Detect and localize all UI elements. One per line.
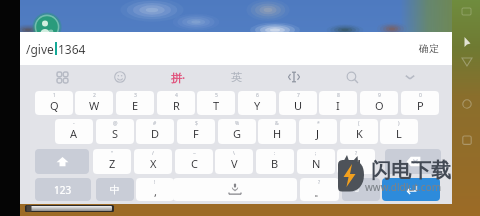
button[interactable]: $: [177, 119, 215, 144]
staticText: W: [89, 98, 100, 113]
staticText: *: [317, 120, 320, 127]
staticText: #: [153, 120, 157, 127]
staticText: A: [70, 126, 78, 141]
staticText: 123: [54, 183, 72, 197]
staticText: R: [173, 98, 180, 113]
staticText: ): [398, 120, 400, 127]
button[interactable]: Shift: [35, 149, 89, 174]
staticText: E: [132, 98, 139, 113]
staticText: -: [73, 120, 75, 127]
staticText: U: [294, 98, 303, 113]
button[interactable]: 英: [207, 65, 265, 89]
staticText: T: [213, 98, 220, 113]
staticText: 拼·: [171, 70, 186, 85]
staticText: &: [275, 120, 279, 127]
staticText: M: [351, 156, 361, 171]
staticText: ;: [315, 150, 317, 157]
staticText: 确定: [419, 42, 439, 55]
staticText: Z: [109, 156, 116, 171]
staticText: V: [231, 156, 238, 171]
staticText: K: [356, 126, 363, 141]
staticText: 3: [134, 92, 137, 99]
button[interactable]: Hide keyboard: [381, 65, 439, 89]
button[interactable]: Enter: [382, 178, 440, 201]
button[interactable]: 7: [279, 91, 317, 115]
staticText: S: [112, 126, 119, 141]
button[interactable]: 4: [157, 91, 195, 115]
staticText: 1364: [58, 41, 86, 57]
button[interactable]: ~: [175, 149, 213, 174]
button[interactable]: 1: [35, 91, 73, 115]
button[interactable]: &: [258, 119, 296, 144]
button[interactable]: ?: [300, 178, 339, 201]
button[interactable]: 2: [75, 91, 113, 115]
staticText: L: [396, 126, 402, 141]
staticText: P: [417, 98, 424, 113]
staticText: 6: [256, 92, 259, 99]
staticText: H: [273, 126, 282, 141]
button[interactable]: !: [136, 178, 174, 201]
button[interactable]: 6: [238, 91, 276, 115]
staticText: %: [235, 120, 240, 127]
button[interactable]: (: [340, 119, 378, 144]
button[interactable]: 中: [96, 178, 134, 201]
staticText: 1: [53, 92, 56, 99]
button[interactable]: Search: [323, 65, 381, 89]
staticText: @: [113, 120, 118, 127]
button[interactable]: Apps: [33, 65, 91, 89]
staticText: 7: [297, 92, 300, 99]
button[interactable]: 5: [197, 91, 235, 115]
button[interactable]: :: [256, 149, 294, 174]
button[interactable]: *: [299, 119, 337, 144]
button[interactable]: 8: [319, 91, 357, 115]
staticText: :: [274, 150, 276, 157]
staticText: I: [336, 98, 340, 113]
button[interactable]: /: [134, 149, 172, 174]
staticText: O: [375, 98, 384, 113]
button[interactable]: ): [380, 119, 418, 144]
button[interactable]: ": [93, 149, 131, 174]
staticText: 8: [337, 92, 340, 99]
staticText: www.dldlut.com: [365, 180, 441, 194]
button[interactable]: \: [215, 149, 253, 174]
button[interactable]: @: [96, 119, 134, 144]
button[interactable]: ?: [337, 149, 375, 174]
staticText: ": [111, 150, 114, 157]
button[interactable]: Move cursor: [265, 65, 323, 89]
staticText: Q: [50, 98, 59, 113]
staticText: 闪电下载: [371, 158, 451, 183]
button[interactable]: 3: [116, 91, 154, 115]
staticText: ,: [154, 184, 157, 199]
staticText: /: [152, 150, 154, 157]
staticText: \: [233, 150, 235, 157]
button[interactable]: 拼·: [149, 65, 207, 89]
staticText: 中: [110, 183, 120, 196]
button[interactable]: 123: [35, 178, 91, 201]
button[interactable]: ;: [297, 149, 335, 174]
staticText: 9: [378, 92, 381, 99]
staticText: /give: [26, 41, 54, 57]
staticText: 5: [215, 92, 218, 99]
staticText: ?: [355, 150, 358, 157]
button[interactable]: Emoji: [91, 65, 149, 89]
staticText: Y: [254, 98, 261, 113]
staticText: C: [191, 156, 198, 171]
staticText: !: [154, 179, 156, 186]
button[interactable]: 确定: [406, 34, 452, 63]
button[interactable]: Space: [173, 178, 297, 201]
button[interactable]: 9: [360, 91, 398, 115]
button[interactable]: -: [55, 119, 93, 144]
button[interactable]: %: [218, 119, 256, 144]
staticText: G: [233, 126, 242, 141]
staticText: B: [271, 156, 279, 171]
button[interactable]: Backspace: [385, 149, 441, 174]
staticText: 0: [419, 92, 422, 99]
staticText: 4: [175, 92, 178, 99]
button[interactable]: Symbols: [342, 178, 380, 201]
staticText: N: [312, 156, 321, 171]
staticText: ?: [318, 179, 321, 186]
button[interactable]: #: [136, 119, 174, 144]
button[interactable]: 0: [401, 91, 439, 115]
staticText: X: [150, 156, 157, 171]
staticText: ~: [193, 150, 196, 157]
